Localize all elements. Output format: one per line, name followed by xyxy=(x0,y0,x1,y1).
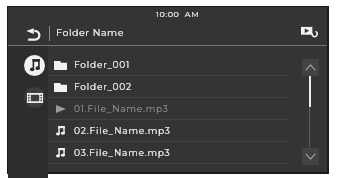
staticText: Folder Name xyxy=(56,27,125,39)
button[interactable]: Return to playback xyxy=(293,20,327,45)
button[interactable]: Back xyxy=(8,20,49,45)
staticText: 03.File_Name.mp3 xyxy=(74,147,171,158)
button[interactable]: 01.File_Name.mp3 xyxy=(48,98,288,119)
button[interactable]: 03.File_Name.mp3 xyxy=(48,142,288,163)
button[interactable]: 02.File_Name.mp3 xyxy=(48,120,288,141)
staticText: Folder_002 xyxy=(74,81,132,92)
button[interactable]: Folder_001 xyxy=(48,54,288,75)
button[interactable]: Video xyxy=(24,87,45,108)
staticText: Folder_001 xyxy=(74,59,131,70)
button[interactable]: Scroll down xyxy=(302,148,319,165)
staticText: 02.File_Name.mp3 xyxy=(74,125,171,136)
button[interactable]: Scroll up xyxy=(302,59,319,76)
staticText: 10:00 AM xyxy=(156,9,200,19)
button[interactable]: Music xyxy=(24,55,45,76)
staticText: 01.File_Name.mp3 xyxy=(74,103,169,114)
button[interactable]: Folder_002 xyxy=(48,76,288,97)
